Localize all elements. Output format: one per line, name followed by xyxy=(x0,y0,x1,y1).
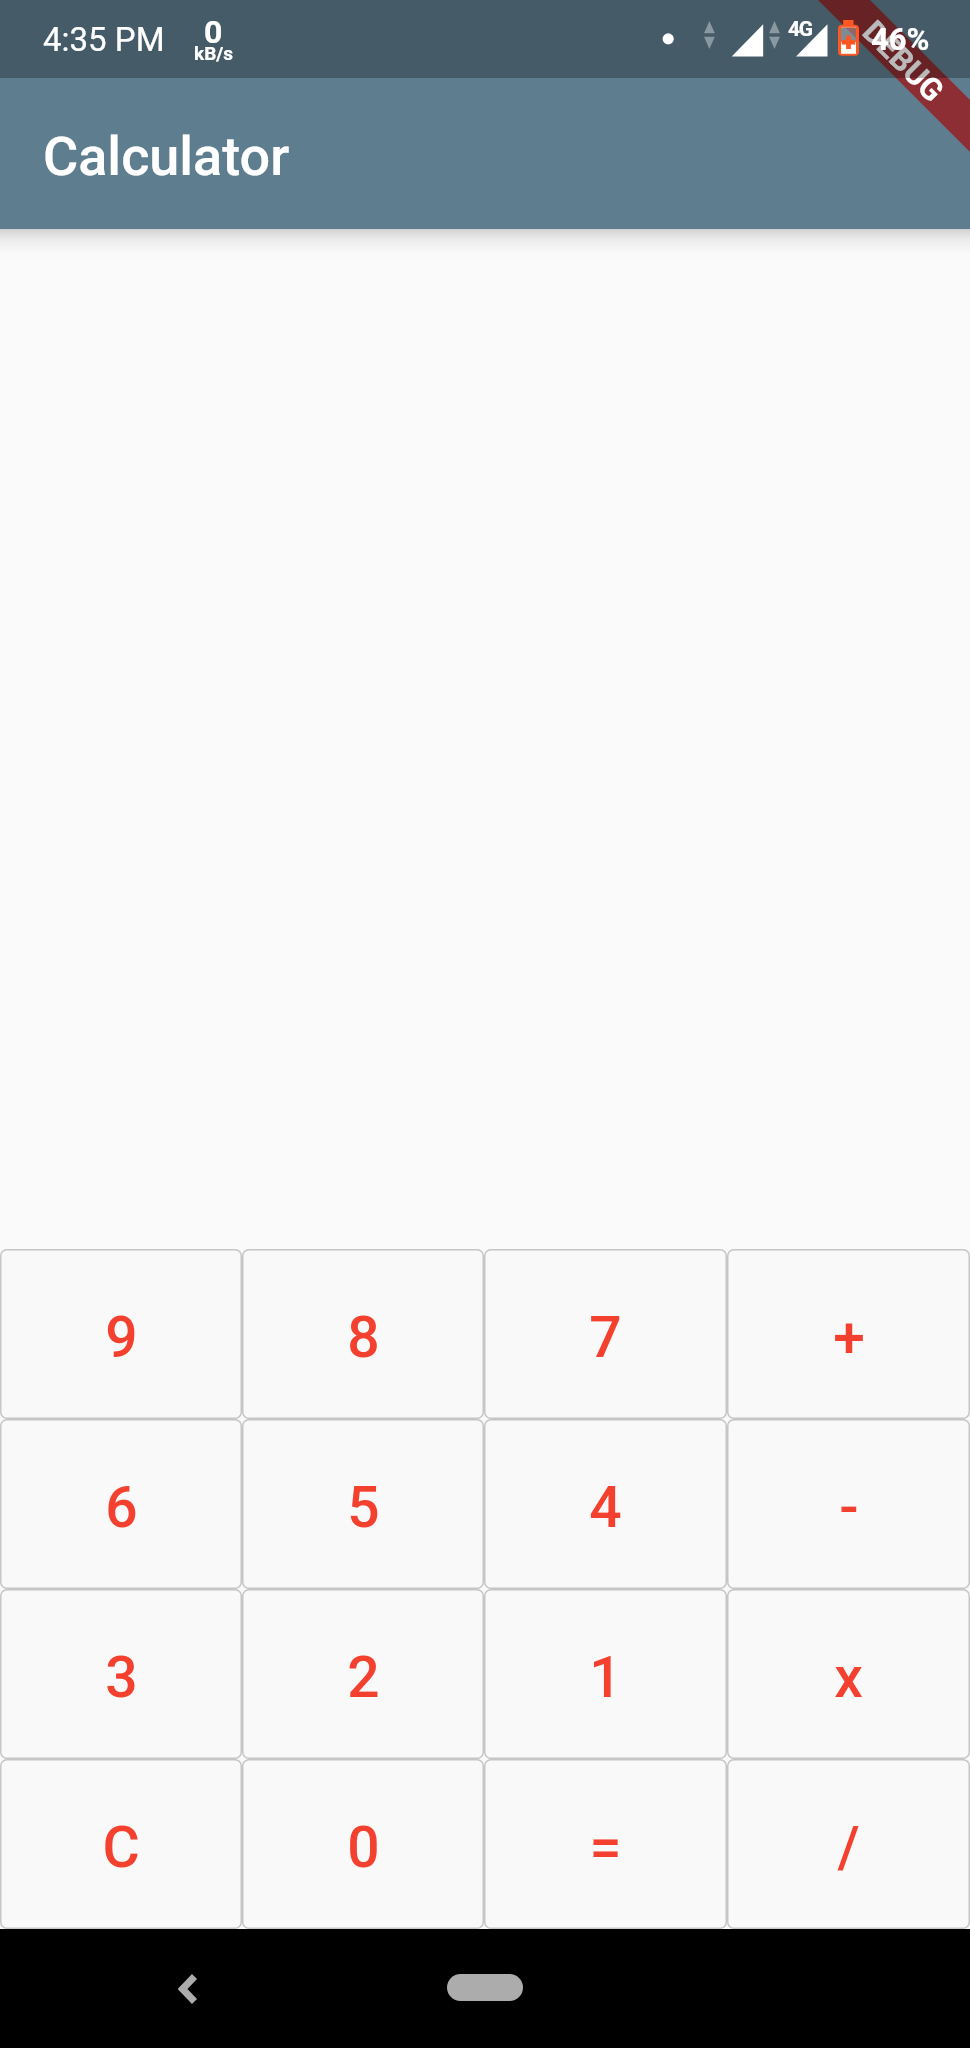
staticText: + xyxy=(833,1304,865,1371)
button[interactable]: C xyxy=(0,1759,242,1929)
staticText: 4 xyxy=(589,1474,622,1541)
button[interactable]: = xyxy=(484,1759,727,1929)
staticText: 7 xyxy=(589,1304,622,1371)
button[interactable]: / xyxy=(727,1759,970,1929)
button[interactable]: Home xyxy=(447,1974,523,2001)
staticText: 8 xyxy=(347,1304,380,1371)
staticText: 0 xyxy=(347,1814,380,1881)
staticText: 46% xyxy=(871,21,930,57)
staticText: DEBUG xyxy=(856,13,951,109)
staticText: x xyxy=(834,1644,863,1711)
button[interactable]: 3 xyxy=(0,1589,242,1759)
staticText: 0 xyxy=(204,13,223,51)
button[interactable]: x xyxy=(727,1589,970,1759)
staticText: 5 xyxy=(347,1474,380,1541)
staticText: - xyxy=(839,1474,859,1541)
button[interactable]: 5 xyxy=(242,1419,484,1589)
button[interactable]: 8 xyxy=(242,1249,484,1419)
button[interactable]: 4 xyxy=(484,1419,727,1589)
staticText: 4:35 PM xyxy=(43,20,165,59)
button[interactable]: 9 xyxy=(0,1249,242,1419)
button[interactable]: 2 xyxy=(242,1589,484,1759)
button[interactable]: - xyxy=(727,1419,970,1589)
staticText: 2 xyxy=(347,1644,380,1711)
button[interactable]: + xyxy=(727,1249,970,1419)
button[interactable]: 6 xyxy=(0,1419,242,1589)
button[interactable]: 0 xyxy=(242,1759,484,1929)
staticText: 4G xyxy=(788,17,812,42)
button[interactable]: 7 xyxy=(484,1249,727,1419)
button[interactable]: Back xyxy=(148,1949,228,2029)
staticText: / xyxy=(837,1814,860,1881)
button[interactable]: 1 xyxy=(484,1589,727,1759)
staticText: kB/s xyxy=(194,42,234,64)
staticText: Calculator xyxy=(43,125,290,188)
staticText: C xyxy=(102,1814,140,1881)
staticText: = xyxy=(589,1814,622,1881)
staticText: 3 xyxy=(105,1644,138,1711)
staticText: 6 xyxy=(105,1474,138,1541)
staticText: 1 xyxy=(589,1644,622,1711)
staticText: 9 xyxy=(105,1304,138,1371)
